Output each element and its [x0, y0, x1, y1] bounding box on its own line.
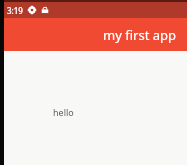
- button[interactable]: my first app: [4, 18, 187, 51]
- other: Settings: [28, 6, 36, 14]
- other: Lock: [41, 6, 49, 14]
- staticText: hello: [53, 106, 74, 118]
- staticText: 3:19: [7, 5, 23, 16]
- staticText: my first app: [103, 26, 176, 44]
